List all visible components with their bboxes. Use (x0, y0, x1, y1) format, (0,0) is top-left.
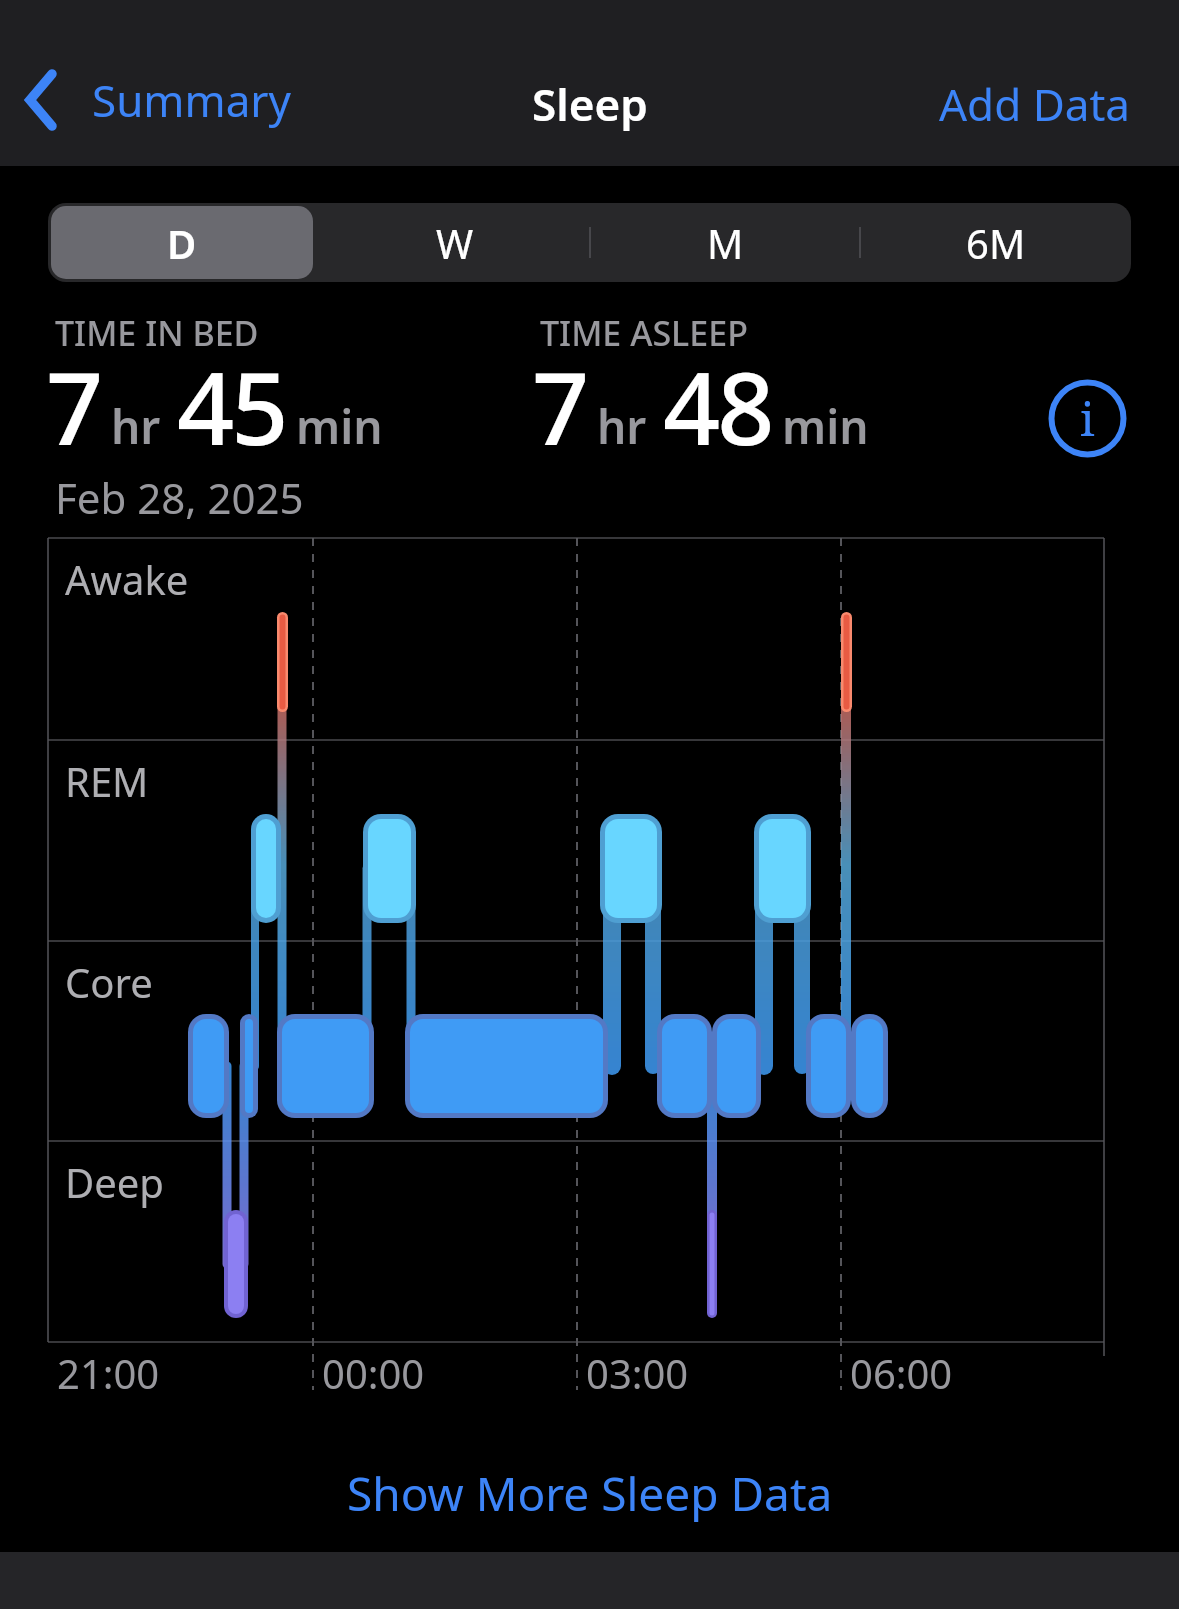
staticText: min (782, 395, 869, 458)
staticText: Deep (65, 1155, 164, 1209)
staticText: i (1080, 387, 1095, 450)
staticText: REM (65, 754, 149, 808)
staticText: D (167, 216, 197, 270)
staticText: TIME IN BED (55, 310, 259, 356)
button[interactable]: M (590, 203, 861, 282)
button[interactable]: W (319, 203, 590, 282)
button[interactable]: Show More Sleep Data (327, 1452, 853, 1535)
staticText: 00:00 (322, 1346, 425, 1400)
staticText: TIME ASLEEP (540, 310, 748, 356)
staticText: 21:00 (57, 1346, 160, 1400)
button[interactable]: Summary (22, 70, 291, 130)
staticText: min (296, 395, 383, 458)
button[interactable]: Add Data (939, 74, 1131, 134)
staticText: Awake (65, 552, 189, 606)
button[interactable]: D (51, 206, 313, 279)
staticText: Feb 28, 2025 (55, 469, 304, 526)
staticText: 6M (966, 216, 1026, 270)
staticText: 7 (46, 338, 101, 474)
button[interactable]: 6M (860, 203, 1131, 282)
staticText: Sleep (532, 74, 648, 134)
staticText: M (707, 216, 744, 270)
staticText: 45 (177, 338, 286, 474)
staticText: Show More Sleep Data (347, 1462, 833, 1525)
staticText: W (436, 216, 474, 270)
staticText: 7 (532, 338, 587, 474)
staticText: 06:00 (850, 1346, 953, 1400)
staticText: Core (65, 955, 153, 1009)
staticText: 48 (663, 338, 772, 474)
button[interactable]: i (1050, 381, 1125, 456)
staticText: Summary (92, 70, 291, 130)
staticText: hr (111, 395, 161, 458)
staticText: 03:00 (586, 1346, 689, 1400)
staticText: hr (597, 395, 647, 458)
